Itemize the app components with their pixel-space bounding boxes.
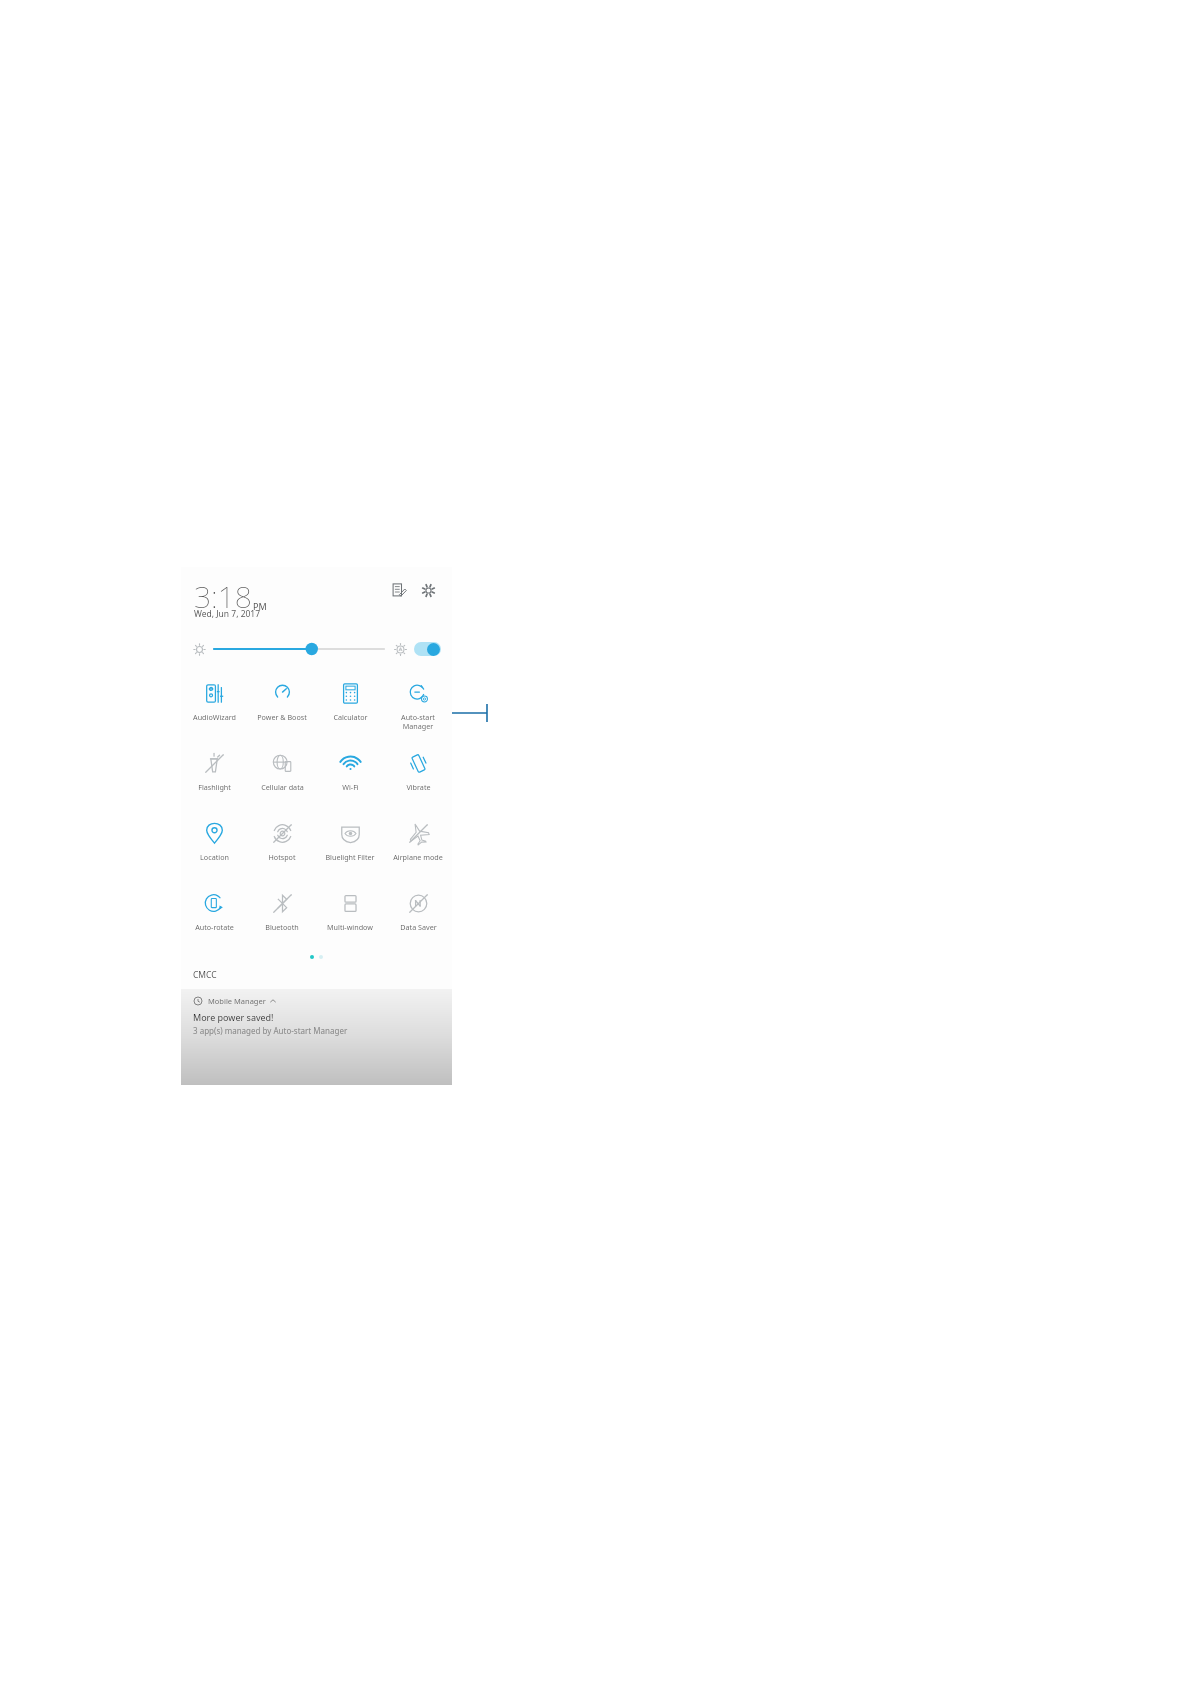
staticText: Cellular data [261,782,304,792]
button[interactable]: Auto-rotate [181,879,248,949]
staticText: CMCC [193,969,217,981]
staticText: Power & Boost [257,712,307,722]
staticText: Auto-rotate [195,922,234,932]
button[interactable]: Settings [417,579,439,601]
staticText: PM [253,600,267,612]
staticText: More power saved! [193,1011,274,1023]
button[interactable]: Cellular data [248,739,316,809]
button[interactable]: Bluelight Filter [316,809,384,879]
button[interactable]: Wi-Fi [316,739,384,809]
button[interactable]: Airplane mode [384,809,452,879]
button[interactable]: Hotspot [248,809,316,879]
staticText: Multi-window [327,922,373,932]
staticText: Flashlight [198,782,231,792]
button[interactable]: Bluetooth [248,879,316,949]
button[interactable]: AudioWizard [181,669,248,739]
button[interactable]: Multi-window [316,879,384,949]
staticText: Wi-Fi [342,782,359,792]
button[interactable]: Edit quick settings [387,579,409,601]
staticText: Vibrate [406,782,431,792]
button[interactable]: Location [181,809,248,879]
button[interactable]: Mobile Manager [181,989,452,1085]
button[interactable]: Calculator [316,669,384,739]
staticText: Data Saver [400,922,437,932]
staticText: 3:18 [194,576,252,617]
button[interactable]: Auto brightness toggle [414,642,441,656]
staticText: Auto-start Manager [401,712,435,731]
button[interactable]: Data Saver [384,879,452,949]
staticText: AudioWizard [193,712,236,722]
staticText: 3 app(s) managed by Auto-start Manager [193,1025,348,1036]
staticText: Calculator [333,712,368,722]
staticText: Bluetooth [265,922,299,932]
button[interactable]: Brightness [214,639,384,659]
staticText: Mobile Manager [208,996,266,1006]
staticText: Hotspot [268,852,296,862]
button[interactable]: Power & Boost [248,669,316,739]
staticText: Wed, Jun 7, 2017 [194,608,261,620]
staticText: Location [200,852,229,862]
staticText: Bluelight Filter [325,852,375,862]
button[interactable]: Auto-start Manager [384,669,452,739]
staticText: Airplane mode [393,852,443,862]
button[interactable]: Flashlight [181,739,248,809]
button[interactable]: Vibrate [384,739,452,809]
